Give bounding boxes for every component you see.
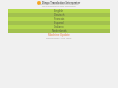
button[interactable]: Italiano (8, 25, 110, 29)
staticText: Espanol (54, 21, 64, 25)
button[interactable]: Francais (8, 17, 110, 21)
staticText: Italiano (54, 25, 64, 29)
button[interactable]: Espanol (8, 21, 110, 25)
button[interactable]: Deutsch (8, 13, 110, 17)
staticText: Francais (54, 17, 65, 21)
staticText: tap a language to start translating (42, 5, 76, 8)
staticText: Nederlands (52, 29, 67, 33)
button[interactable]: English (8, 9, 110, 13)
staticText: select your language from the list below (39, 3, 79, 6)
staticText: English (54, 9, 64, 13)
button[interactable]: Machine Update (48, 33, 70, 37)
button[interactable]: Nederlands (8, 29, 110, 33)
staticText: Dingo Translation Interpreter (42, 1, 81, 5)
staticText: Deutsch (54, 13, 65, 17)
button[interactable]: Dictionaries - the Light (46, 36, 72, 39)
